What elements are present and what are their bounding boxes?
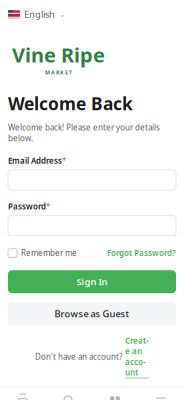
staticText: * (46, 201, 50, 212)
button[interactable]: Menu (138, 393, 184, 400)
staticText: M A R K E T (45, 69, 72, 76)
staticText: Welcome back! Please enter your details … (8, 122, 160, 143)
staticText: Don't have an account? (35, 351, 122, 362)
staticText: Remember me (21, 248, 77, 258)
button[interactable]: Search (46, 393, 92, 400)
button[interactable]: Browse as Guest (8, 302, 176, 325)
button[interactable]: Forgot Password? (107, 246, 176, 260)
button[interactable]: Browse (92, 393, 138, 400)
staticText: ⌄ (59, 10, 66, 19)
staticText: Sign In (76, 275, 107, 288)
staticText: Vine Ripe (12, 41, 105, 68)
staticText: * (62, 155, 66, 166)
staticText: Email Address (8, 155, 62, 166)
button[interactable]: Create an account (125, 335, 149, 378)
staticText: Welcome Back (8, 92, 133, 115)
staticText: Create an account (125, 335, 149, 378)
button[interactable]: Sign In (8, 270, 176, 293)
button[interactable]: Home (0, 393, 46, 400)
staticText: Forgot Password? (107, 248, 176, 258)
button[interactable]: English (6, 5, 68, 23)
button[interactable]: Remember me (8, 246, 77, 260)
staticText: English (24, 8, 55, 20)
staticText: Password (8, 201, 46, 212)
staticText: Browse as Guest (54, 307, 129, 320)
